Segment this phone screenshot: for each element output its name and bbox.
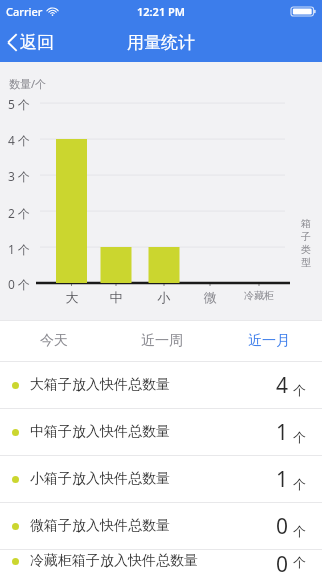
staticText: 微 (190, 289, 230, 305)
staticText: 大 (52, 289, 92, 305)
staticText: 1 个 (8, 241, 30, 257)
staticText: 数量/个 (9, 76, 47, 91)
button[interactable]: 冷藏柜箱子放入快件总数量 (0, 550, 322, 572)
staticText: 3 个 (8, 168, 30, 184)
staticText: 中箱子放入快件总数量 (30, 423, 170, 441)
staticText: Carrier (6, 4, 43, 19)
staticText: 型 (301, 256, 311, 269)
staticText: 2 个 (8, 205, 30, 221)
staticText: 1 (276, 418, 289, 447)
staticText: 近一月 (248, 332, 290, 350)
staticText: 个 (293, 523, 306, 539)
staticText: 0 个 (8, 276, 30, 292)
staticText: 冷藏柜 (239, 289, 279, 302)
button[interactable]: 返回 (0, 28, 64, 57)
staticText: 个 (293, 382, 306, 398)
staticText: 今天 (40, 332, 68, 350)
staticText: 小 (144, 289, 184, 305)
staticText: 大箱子放入快件总数量 (30, 376, 170, 394)
staticText: 5 个 (8, 96, 30, 112)
staticText: 近一周 (141, 332, 183, 350)
staticText: 0 (276, 550, 289, 572)
staticText: 箱 (301, 217, 311, 230)
staticText: 小箱子放入快件总数量 (30, 470, 170, 488)
button[interactable]: 今天 (0, 321, 108, 361)
button[interactable]: 大箱子放入快件总数量 (0, 362, 322, 408)
staticText: 个 (293, 429, 306, 445)
staticText: 返回 (20, 32, 54, 53)
staticText: 1 (276, 465, 289, 494)
button[interactable]: 中箱子放入快件总数量 (0, 409, 322, 455)
button[interactable]: 近一周 (108, 321, 215, 361)
staticText: 子 (301, 230, 311, 243)
staticText: 12:21 PM (137, 4, 186, 19)
staticText: 微箱子放入快件总数量 (30, 517, 170, 535)
staticText: 用量统计 (127, 32, 195, 53)
button[interactable]: 小箱子放入快件总数量 (0, 456, 322, 502)
staticText: 中 (96, 289, 136, 305)
staticText: 类 (301, 243, 311, 256)
staticText: 4 个 (8, 132, 30, 148)
staticText: 冷藏柜箱子放入快件总数量 (30, 552, 198, 570)
staticText: 0 (276, 512, 289, 541)
staticText: 个 (293, 476, 306, 492)
button[interactable]: 近一月 (215, 321, 322, 361)
staticText: 个 (293, 554, 306, 570)
button[interactable]: 微箱子放入快件总数量 (0, 503, 322, 549)
staticText: 4 (276, 371, 289, 400)
